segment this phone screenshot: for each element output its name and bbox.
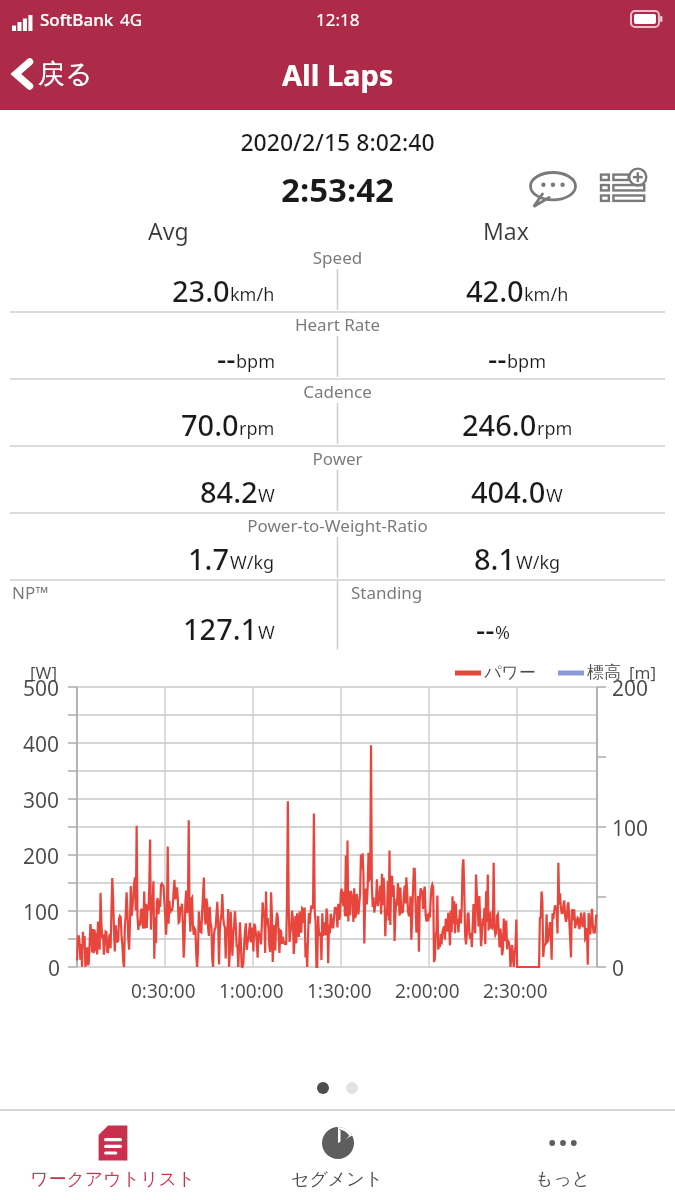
button[interactable]: Comments xyxy=(523,165,583,213)
staticText: NP™ xyxy=(12,581,49,604)
staticText: bpm xyxy=(236,349,275,374)
staticText: SoftBank xyxy=(40,8,114,31)
staticText: km/h xyxy=(524,282,569,307)
staticText: 1:00:00 xyxy=(219,978,284,1004)
staticText: 100 xyxy=(23,898,60,927)
staticText: 2:30:00 xyxy=(483,978,548,1004)
staticText: 300 xyxy=(23,786,60,815)
staticText: 8.1 xyxy=(474,539,516,578)
staticText: 戻る xyxy=(38,57,93,91)
staticText: rpm xyxy=(537,416,573,441)
staticText: 84.2 xyxy=(200,472,258,511)
staticText: W xyxy=(258,620,275,645)
staticText: km/h xyxy=(230,282,275,307)
staticText: もっと xyxy=(535,1168,591,1191)
staticText: All Laps xyxy=(282,55,394,94)
staticText: Standing xyxy=(351,581,423,604)
staticText: 246.0 xyxy=(462,405,537,444)
staticText: -- xyxy=(217,338,236,377)
staticText: 404.0 xyxy=(471,472,546,511)
staticText: 0 xyxy=(612,954,625,983)
staticText: Cadence xyxy=(0,380,675,403)
staticText: 2:53:42 xyxy=(281,167,394,212)
staticText: 23.0 xyxy=(172,271,230,310)
staticText: [W] xyxy=(30,661,57,684)
staticText: 12:18 xyxy=(316,8,360,31)
staticText: % xyxy=(495,620,510,645)
staticText: rpm xyxy=(239,416,275,441)
staticText: 42.0 xyxy=(466,271,524,310)
button[interactable]: 戻る xyxy=(0,49,109,99)
staticText: W xyxy=(546,483,563,508)
staticText: [m] xyxy=(629,661,657,684)
staticText: 400 xyxy=(23,730,60,759)
staticText: 1:30:00 xyxy=(307,978,372,1004)
staticText: bpm xyxy=(507,349,546,374)
button[interactable] xyxy=(346,1082,358,1094)
staticText: W xyxy=(258,483,275,508)
staticText: 500 xyxy=(23,674,60,703)
staticText: W/kg xyxy=(516,550,561,575)
staticText: Speed xyxy=(0,246,675,269)
staticText: 1.7 xyxy=(188,539,230,578)
staticText: ワークアウトリスト xyxy=(30,1168,196,1191)
staticText: Power-to-Weight-Ratio xyxy=(0,514,675,537)
staticText: 0 xyxy=(48,954,61,983)
staticText: Max xyxy=(483,215,529,246)
staticText: 2:00:00 xyxy=(395,978,460,1004)
staticText: 200 xyxy=(612,674,649,703)
staticText: 70.0 xyxy=(181,405,239,444)
staticText: W/kg xyxy=(230,550,275,575)
staticText: 200 xyxy=(23,842,60,871)
staticText: 100 xyxy=(612,814,649,843)
staticText: 標高 xyxy=(587,662,621,683)
staticText: Heart Rate xyxy=(0,313,675,336)
button[interactable]: ワークアウトリスト xyxy=(0,1111,225,1200)
staticText: パワー xyxy=(484,662,536,683)
staticText: Avg xyxy=(148,215,189,246)
button[interactable]: Add to list xyxy=(595,165,653,213)
button[interactable]: もっと xyxy=(450,1111,675,1200)
staticText: 2020/2/15 8:02:40 xyxy=(0,126,675,157)
staticText: 4G xyxy=(120,8,143,31)
staticText: Power xyxy=(0,447,675,470)
button[interactable]: セグメント xyxy=(225,1111,450,1200)
staticText: 0:30:00 xyxy=(131,978,196,1004)
staticText: セグメント xyxy=(291,1168,384,1191)
staticText: -- xyxy=(488,338,507,377)
button[interactable] xyxy=(317,1082,329,1094)
staticText: 127.1 xyxy=(183,609,258,648)
staticText: -- xyxy=(476,609,495,648)
